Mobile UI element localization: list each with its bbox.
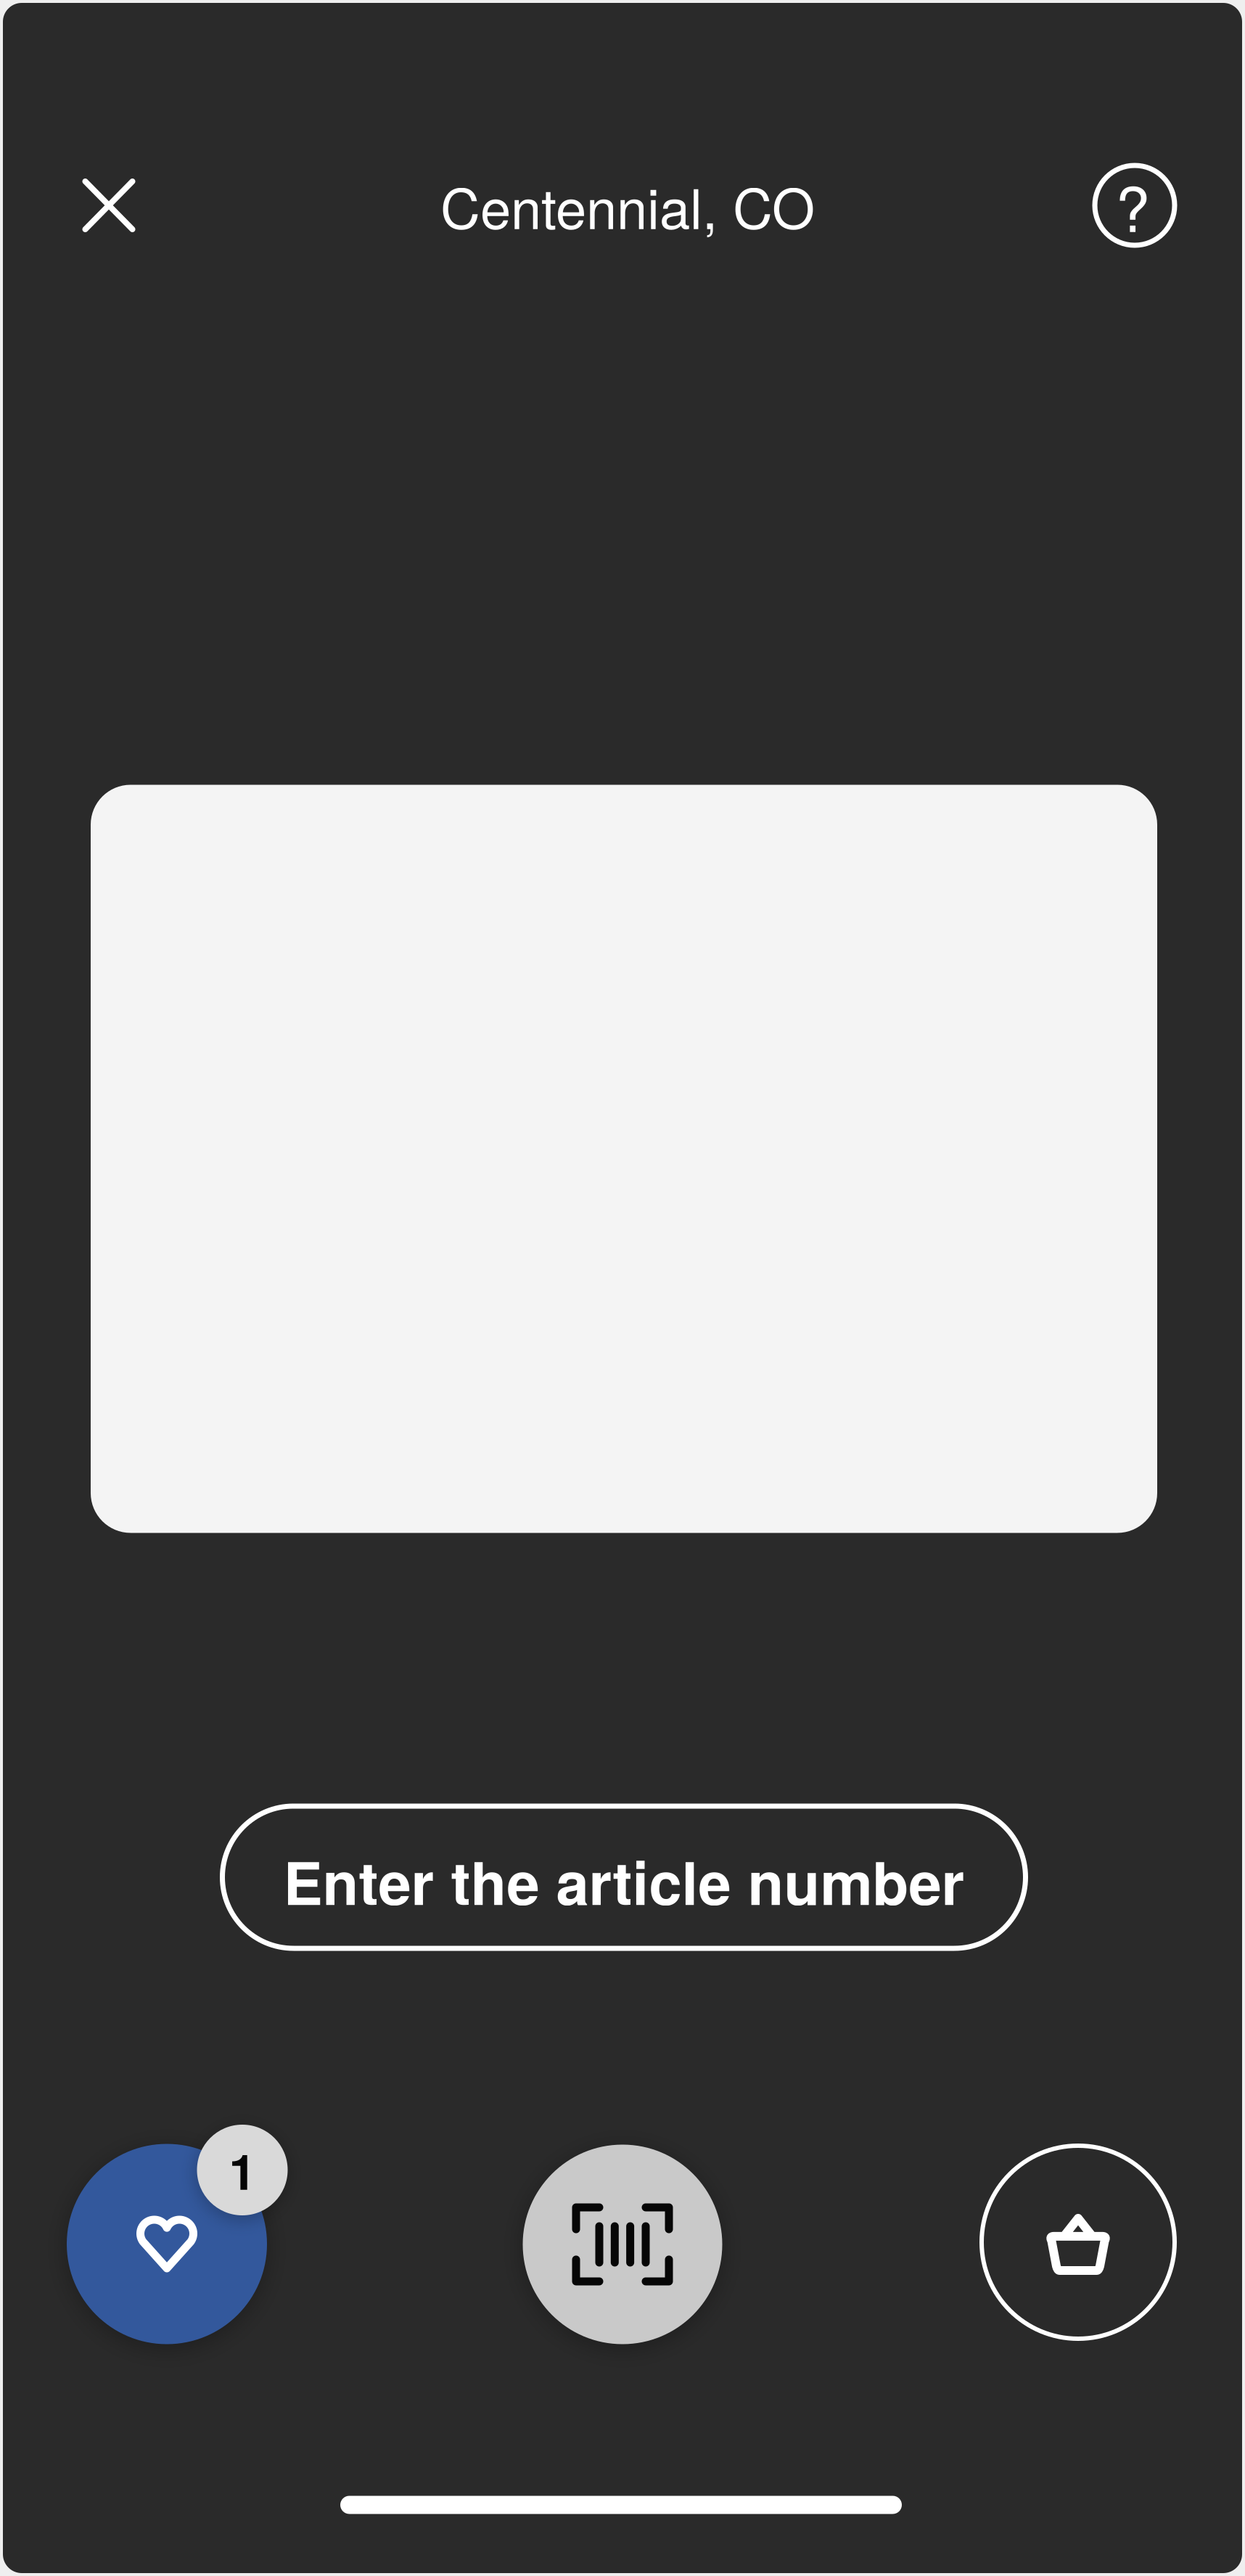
button[interactable]: Shopping basket xyxy=(979,2144,1177,2341)
staticText: 1 xyxy=(229,2135,256,2205)
button[interactable]: Scan barcode xyxy=(523,2145,722,2344)
staticText: Enter the article number xyxy=(283,1839,965,1923)
button[interactable]: Help xyxy=(1075,145,1195,266)
button[interactable]: Close xyxy=(50,147,167,264)
button[interactable]: Enter the article number xyxy=(222,1806,1026,1948)
staticText: Centennial, CO xyxy=(440,166,815,245)
button[interactable]: Favourites, 1 saved item xyxy=(67,2125,287,2344)
staticText: ? xyxy=(1115,161,1150,250)
